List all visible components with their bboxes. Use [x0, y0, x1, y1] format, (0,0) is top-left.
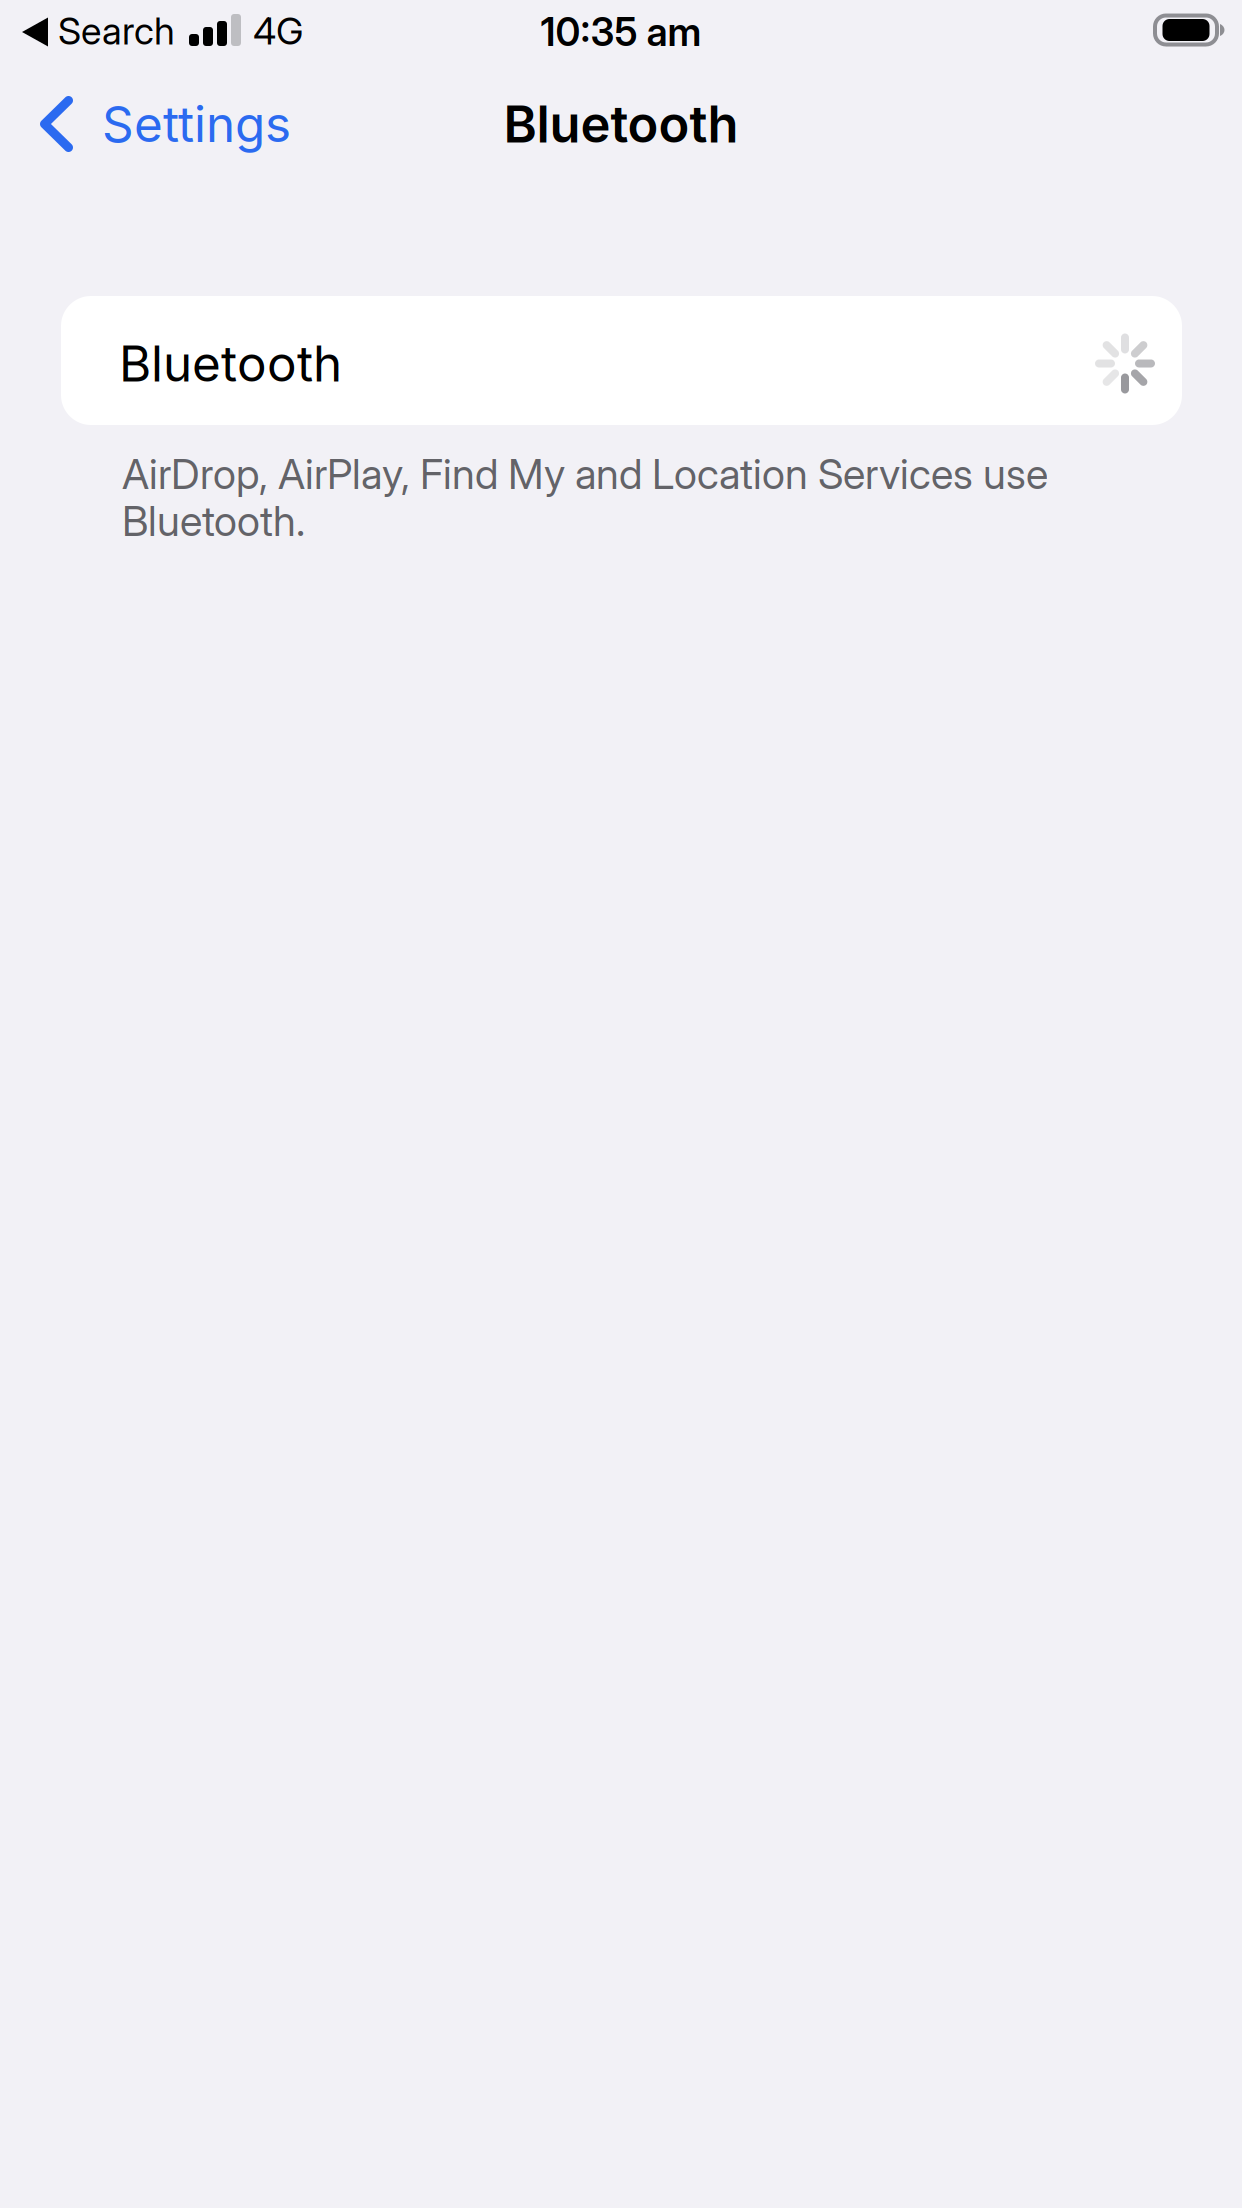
staticText: Bluetooth — [503, 93, 738, 155]
button[interactable]: Bluetooth — [61, 296, 1182, 425]
staticText: AirDrop, AirPlay, Find My and Location S… — [122, 449, 1048, 546]
staticText: Settings — [102, 94, 291, 154]
button[interactable]: Settings — [0, 60, 315, 188]
staticText: Bluetooth — [119, 334, 342, 393]
staticText: Search — [58, 8, 175, 54]
staticText: 4G — [253, 8, 303, 54]
staticText: 10:35 am — [540, 9, 701, 55]
